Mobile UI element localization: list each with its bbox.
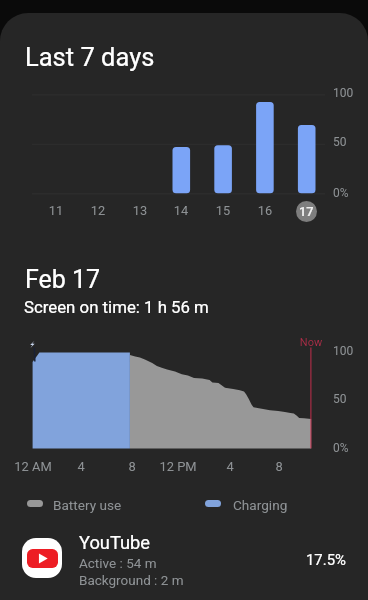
staticText: 16 [165,203,365,218]
staticText: Feb 17 [25,265,101,294]
button[interactable]: Charging [200,493,298,517]
staticText: 12 PM [78,459,278,474]
staticText: Now [211,336,368,349]
staticText: 4 [130,459,330,474]
staticText: Background : 2 m [79,572,184,588]
staticText: Active : 54 m [79,555,157,571]
staticText: 12 AM [0,459,133,474]
staticText: 4 [0,459,181,474]
button[interactable]: Feb 17 [296,201,317,222]
staticText: 17.5% [306,551,346,568]
staticText: 8 [32,459,232,474]
staticText: 17 [299,204,314,219]
staticText: 12 [0,203,198,218]
staticText: 8 [179,459,368,474]
staticText: 100 [333,86,354,100]
button[interactable]: Battery use [22,493,128,517]
staticText: 100 [333,344,354,358]
staticText: 14 [81,203,281,218]
staticText: YouTube [79,532,151,553]
button[interactable]: YouTube [0,525,368,595]
staticText: Last 7 days [25,42,155,72]
staticText: 13 [40,203,240,218]
staticText: 0% [333,441,349,455]
staticText: Screen on time: 1 h 56 m [24,297,209,317]
staticText: 50 [333,135,347,149]
staticText: 0% [333,186,349,200]
staticText: Battery use [53,497,122,513]
staticText: 11 [0,203,156,218]
staticText: 50 [333,392,347,406]
staticText: Charging [233,497,288,513]
staticText: 15 [123,203,323,218]
